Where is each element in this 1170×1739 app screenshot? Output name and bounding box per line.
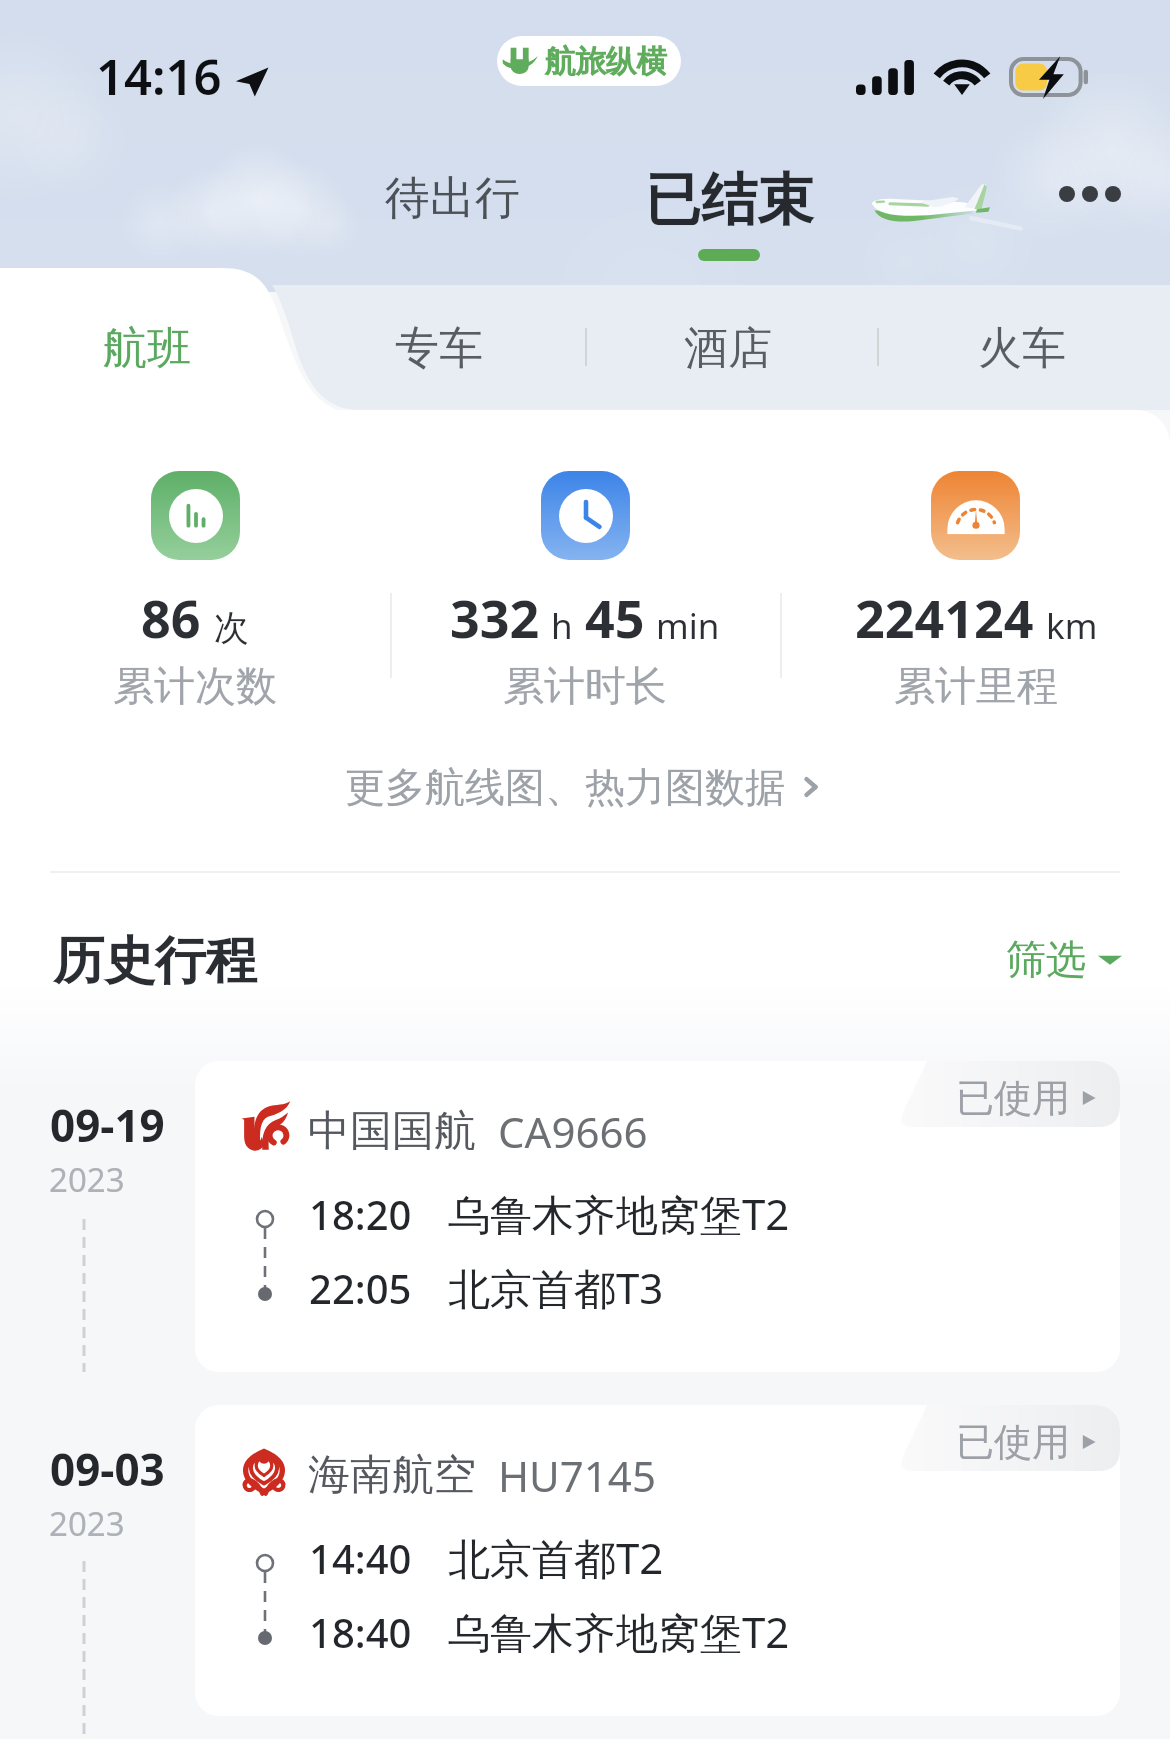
staticText: 2023 (49, 1157, 125, 1202)
staticText: 09-03 (50, 1439, 165, 1499)
staticText: 332 (450, 582, 540, 653)
staticText: 乌鲁木齐地窝堡T2 (448, 1185, 790, 1242)
button[interactable]: 已使用 (195, 1061, 1120, 1372)
button[interactable]: Total flights (151, 471, 240, 560)
staticText: 航旅纵横 (545, 42, 667, 81)
staticText: 已使用 (956, 1074, 1070, 1122)
staticText: 已使用 (956, 1418, 1070, 1466)
staticText: 航班 (103, 321, 191, 376)
button[interactable]: Total mileage (931, 471, 1020, 560)
button[interactable]: More options (1043, 168, 1137, 220)
staticText: min (656, 602, 720, 650)
staticText: HU7145 (498, 1447, 656, 1504)
button[interactable]: 待出行 (371, 156, 534, 241)
button[interactable]: 航班 (16, 288, 278, 410)
staticText: 酒店 (684, 321, 772, 376)
staticText: 累计时长 (503, 661, 667, 713)
button[interactable]: 已使用 (195, 1405, 1120, 1716)
staticText: 次 (214, 606, 249, 650)
staticText: km (1046, 602, 1098, 650)
staticText: 待出行 (385, 170, 520, 227)
staticText: 14:40 (309, 1531, 412, 1585)
button[interactable]: 更多航线图、热力图数据 (331, 752, 839, 822)
staticText: 中国国航 (308, 1105, 476, 1158)
staticText: 更多航线图、热力图数据 (345, 762, 785, 812)
other: Battery charging (1009, 57, 1089, 97)
staticText: 专车 (395, 321, 483, 376)
staticText: 北京首都T3 (448, 1259, 664, 1316)
button[interactable]: 火车 (891, 288, 1153, 410)
button[interactable]: 已结束 (629, 151, 829, 275)
staticText: 火车 (978, 321, 1066, 376)
staticText: 14:16 (96, 43, 222, 110)
staticText: 累计次数 (113, 661, 277, 713)
staticText: 乌鲁木齐地窝堡T2 (448, 1603, 790, 1660)
staticText: 历史行程 (53, 929, 257, 993)
staticText: 45 (585, 582, 645, 653)
staticText: 已结束 (645, 165, 813, 236)
button[interactable]: 筛选 (998, 926, 1130, 992)
staticText: h (551, 602, 573, 650)
other: Wi-Fi (933, 59, 991, 95)
staticText: 累计里程 (894, 661, 1058, 713)
button[interactable]: 酒店 (597, 288, 859, 410)
staticText: 2023 (49, 1501, 125, 1546)
staticText: 18:20 (309, 1187, 412, 1241)
staticText: 筛选 (1006, 934, 1086, 984)
staticText: 86 (141, 582, 201, 653)
staticText: 22:05 (309, 1261, 412, 1315)
button[interactable]: 专车 (308, 288, 570, 410)
staticText: CA9666 (498, 1103, 648, 1160)
staticText: 海南航空 (308, 1449, 476, 1502)
staticText: 18:40 (309, 1605, 412, 1659)
staticText: 09-19 (50, 1095, 165, 1155)
staticText: 224124 (855, 582, 1034, 653)
staticText: 北京首都T2 (448, 1529, 664, 1586)
button[interactable]: Total duration (541, 471, 630, 560)
